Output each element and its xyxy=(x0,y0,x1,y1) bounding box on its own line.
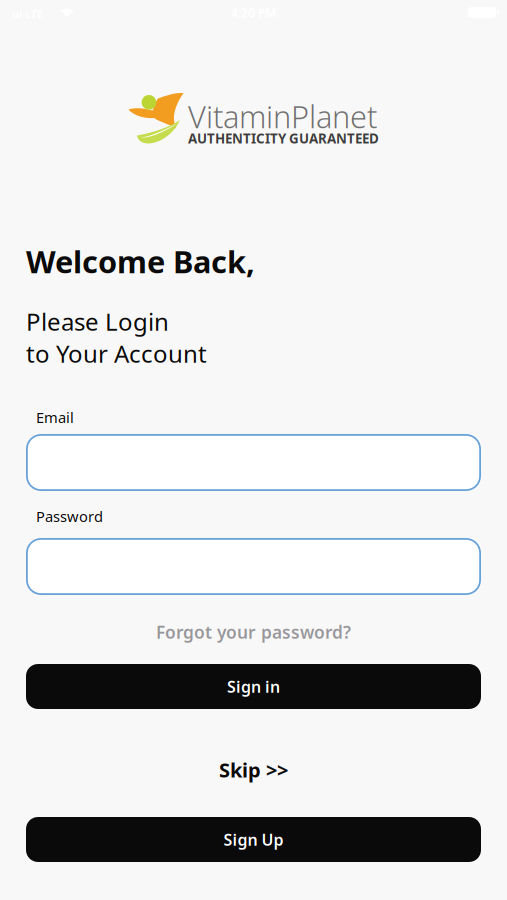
staticText: Skip >> xyxy=(219,756,288,783)
staticText: Sign in xyxy=(227,676,280,697)
button[interactable]: Skip >> xyxy=(219,756,288,783)
staticText: Welcome Back, xyxy=(26,241,255,282)
button[interactable]: Sign Up xyxy=(26,817,481,862)
button[interactable]: Sign in xyxy=(26,664,481,709)
staticText: to Your Account xyxy=(26,337,207,369)
staticText: Password xyxy=(36,506,103,526)
staticText: Email xyxy=(36,407,74,427)
button[interactable]: Email xyxy=(26,434,481,491)
staticText: VitaminPlanet xyxy=(188,96,377,137)
staticText: Please Login xyxy=(26,305,169,337)
button[interactable]: Forgot your password? xyxy=(156,620,351,643)
staticText: Sign Up xyxy=(223,829,283,850)
button[interactable]: Password xyxy=(26,538,481,595)
staticText: AUTHENTICITY GUARANTEED xyxy=(188,129,379,147)
staticText: Forgot your password? xyxy=(156,620,351,643)
